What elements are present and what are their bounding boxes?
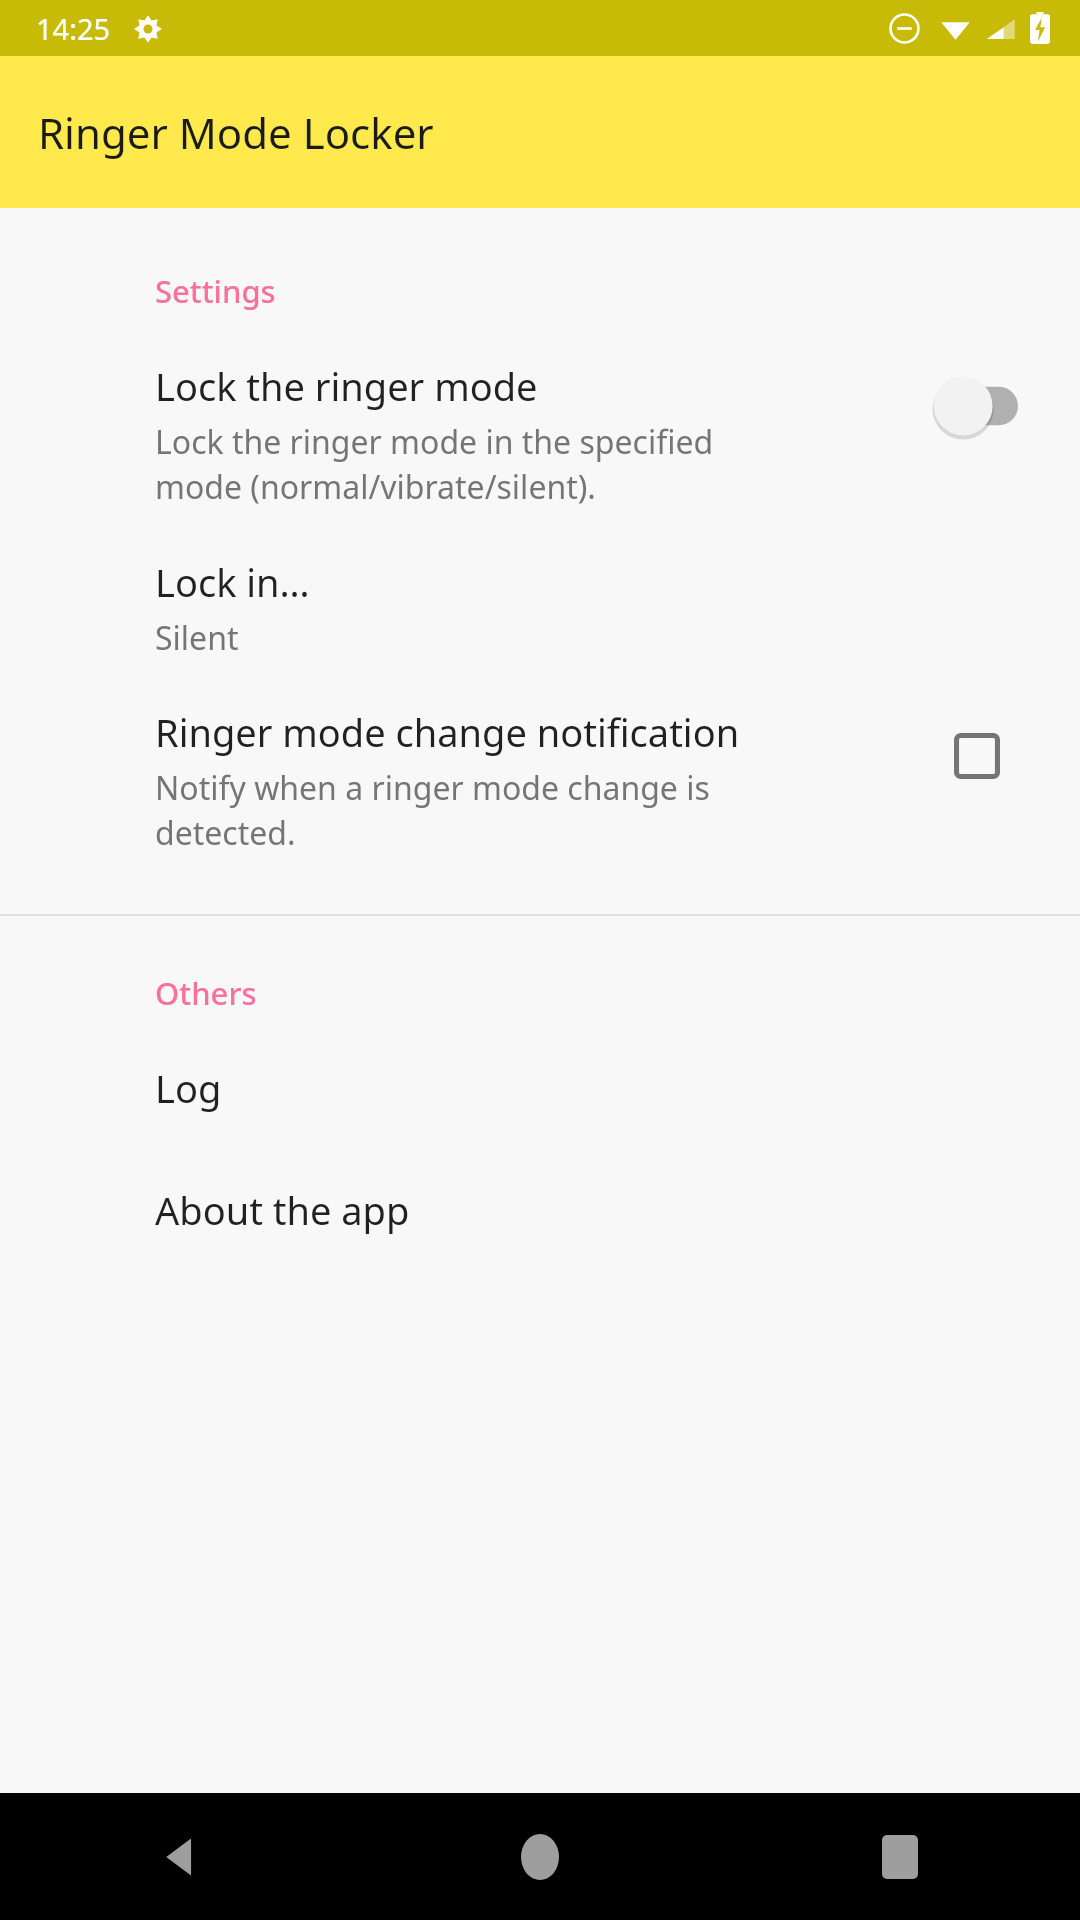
staticText: Lock the ringer mode (155, 360, 538, 412)
staticText: Lock in… (155, 556, 310, 608)
staticText: Silent (155, 616, 239, 660)
button[interactable]: Ringer mode change notification (0, 706, 1080, 854)
staticText: Others (155, 972, 257, 1014)
staticText: 14:25 (36, 9, 111, 48)
staticText: Ringer Mode Locker (38, 104, 434, 161)
staticText: Notify when a ringer mode change is dete… (155, 766, 710, 854)
button[interactable]: Back (0, 1793, 360, 1920)
button[interactable]: Lock the ringer mode toggle (927, 374, 1027, 438)
staticText: Ringer mode change notification (155, 706, 740, 758)
button[interactable]: Home (360, 1793, 720, 1920)
button[interactable]: Ringer mode change notification checkbox (941, 720, 1013, 792)
staticText: Log (155, 1062, 222, 1114)
button[interactable]: Recent apps (720, 1793, 1080, 1920)
staticText: Settings (155, 270, 276, 312)
button[interactable]: Log (0, 1062, 1080, 1114)
staticText: About the app (155, 1184, 410, 1236)
button[interactable]: About the app (0, 1184, 1080, 1236)
button[interactable]: Lock in… (0, 556, 1080, 660)
staticText: Lock the ringer mode in the specified mo… (155, 420, 714, 508)
button[interactable]: Lock the ringer mode (0, 360, 1080, 508)
